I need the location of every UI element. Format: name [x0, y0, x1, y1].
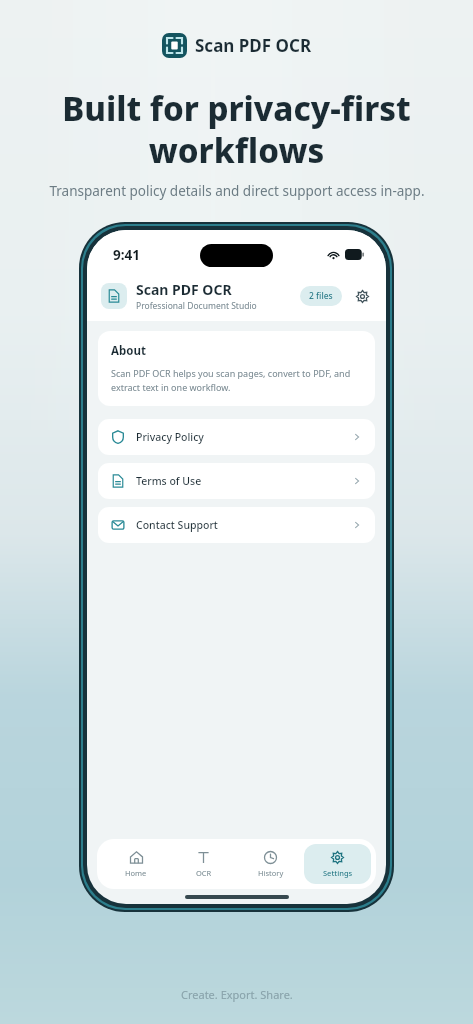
staticText: 9:41 — [113, 246, 140, 264]
staticText: OCR — [196, 868, 212, 878]
staticText: About — [111, 343, 146, 359]
staticText: Scan PDF OCR helps you scan pages, conve… — [111, 367, 362, 394]
button[interactable]: 2 files — [300, 286, 342, 306]
staticText: 2 files — [309, 290, 333, 302]
staticText: Create. Export. Share. — [181, 987, 293, 1002]
button[interactable]: History — [237, 844, 304, 884]
button[interactable]: Settings — [351, 285, 373, 307]
staticText: Settings — [323, 868, 353, 878]
button[interactable]: Privacy Policy — [98, 419, 375, 455]
staticText: Transparent policy details and direct su… — [49, 182, 425, 200]
staticText: Professional Document Studio — [136, 300, 257, 312]
button[interactable]: Terms of Use — [98, 463, 375, 499]
button[interactable]: OCR — [170, 844, 237, 884]
staticText: Privacy Policy — [136, 430, 352, 444]
staticText: Scan PDF OCR — [136, 280, 232, 299]
staticText: Home — [125, 868, 147, 878]
staticText: Built for privacy-first workflows — [26, 86, 447, 173]
button[interactable]: Home — [102, 844, 170, 884]
button[interactable]: Settings — [304, 844, 371, 884]
staticText: Contact Support — [136, 518, 352, 532]
staticText: History — [258, 868, 284, 878]
staticText: Scan PDF OCR — [195, 34, 312, 57]
button[interactable]: Contact Support — [98, 507, 375, 543]
staticText: Terms of Use — [136, 474, 352, 488]
